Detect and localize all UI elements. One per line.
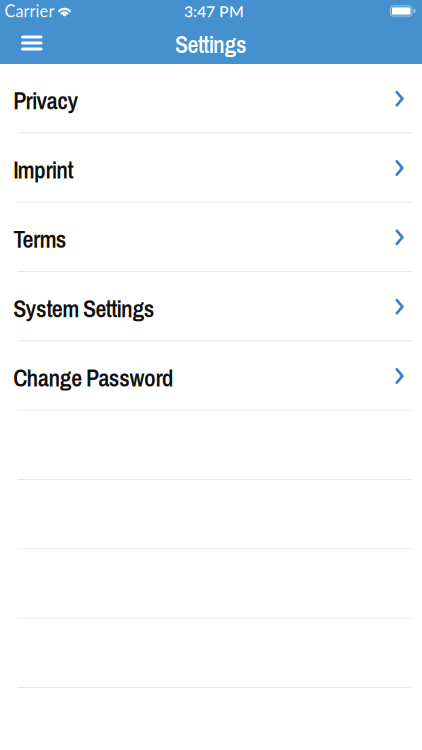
button[interactable]: Menu <box>0 26 42 60</box>
staticText: Privacy <box>13 84 79 117</box>
button[interactable]: Change Password <box>0 341 422 411</box>
staticText: System Settings <box>13 292 155 325</box>
staticText: Imprint <box>13 154 74 186</box>
staticText: Change Password <box>13 362 174 394</box>
button[interactable]: Privacy <box>0 64 422 133</box>
staticText: Carrier <box>4 1 54 21</box>
staticText: Terms <box>13 223 67 255</box>
button[interactable]: Imprint <box>0 133 422 203</box>
button[interactable]: System Settings <box>0 272 422 341</box>
button[interactable]: Terms <box>0 203 422 272</box>
staticText: Settings <box>175 28 247 60</box>
staticText: 3:47 PM <box>184 1 244 20</box>
